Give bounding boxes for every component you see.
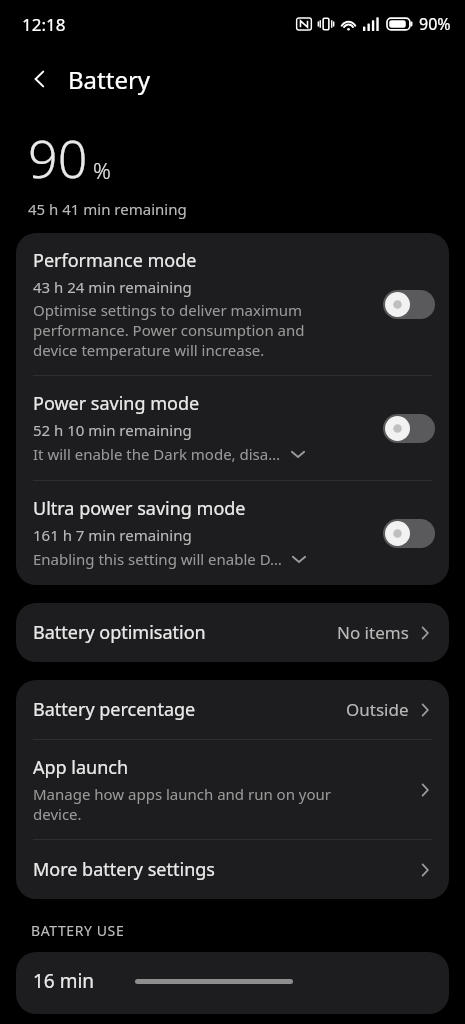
staticText: App launch bbox=[33, 755, 129, 780]
staticText: Optimise settings to deliver maximum bbox=[33, 300, 303, 320]
staticText: 90 bbox=[28, 122, 88, 193]
staticText: % bbox=[93, 155, 111, 185]
staticText: Battery percentage bbox=[33, 697, 346, 722]
staticText: 52 h 10 min remaining bbox=[33, 420, 192, 440]
staticText: Power saving mode bbox=[33, 391, 200, 416]
staticText: No items bbox=[337, 621, 409, 644]
staticText: device. bbox=[33, 804, 82, 824]
button[interactable]: 16 min bbox=[16, 952, 449, 1014]
button[interactable]: Battery optimisation bbox=[16, 603, 449, 662]
staticText: Performance mode bbox=[33, 248, 197, 273]
staticText: 90% bbox=[419, 13, 451, 35]
button[interactable]: Ultra power saving mode bbox=[16, 481, 449, 585]
button[interactable]: Toggle bbox=[383, 290, 435, 319]
staticText: Manage how apps launch and run on your bbox=[33, 784, 332, 804]
button[interactable]: Toggle bbox=[383, 414, 435, 443]
staticText: device temperature will increase. bbox=[33, 340, 265, 360]
button[interactable]: More battery settings bbox=[16, 840, 449, 899]
button[interactable]: Toggle bbox=[383, 519, 435, 548]
staticText: 12:18 bbox=[22, 13, 66, 36]
button[interactable]: App launch bbox=[16, 740, 449, 839]
staticText: Battery optimisation bbox=[33, 620, 337, 645]
staticText: More battery settings bbox=[33, 857, 415, 882]
button[interactable]: Back bbox=[20, 59, 60, 99]
staticText: 43 h 24 min remaining bbox=[33, 277, 192, 297]
staticText: 45 h 41 min remaining bbox=[28, 199, 187, 219]
staticText: performance. Power consumption and bbox=[33, 320, 305, 340]
staticText: 161 h 7 min remaining bbox=[33, 525, 192, 545]
staticText: Enabling this setting will enable D… bbox=[33, 549, 282, 569]
button[interactable]: Battery percentage bbox=[16, 680, 449, 739]
staticText: BATTERY USE bbox=[31, 921, 125, 940]
staticText: Ultra power saving mode bbox=[33, 496, 246, 521]
button[interactable]: Power saving mode bbox=[16, 376, 449, 480]
staticText: 16 min bbox=[33, 968, 95, 994]
staticText: Outside bbox=[346, 698, 409, 721]
staticText: It will enable the Dark mode, disa… bbox=[33, 444, 281, 464]
staticText: Battery bbox=[68, 63, 151, 96]
button[interactable]: Performance mode bbox=[16, 233, 449, 375]
